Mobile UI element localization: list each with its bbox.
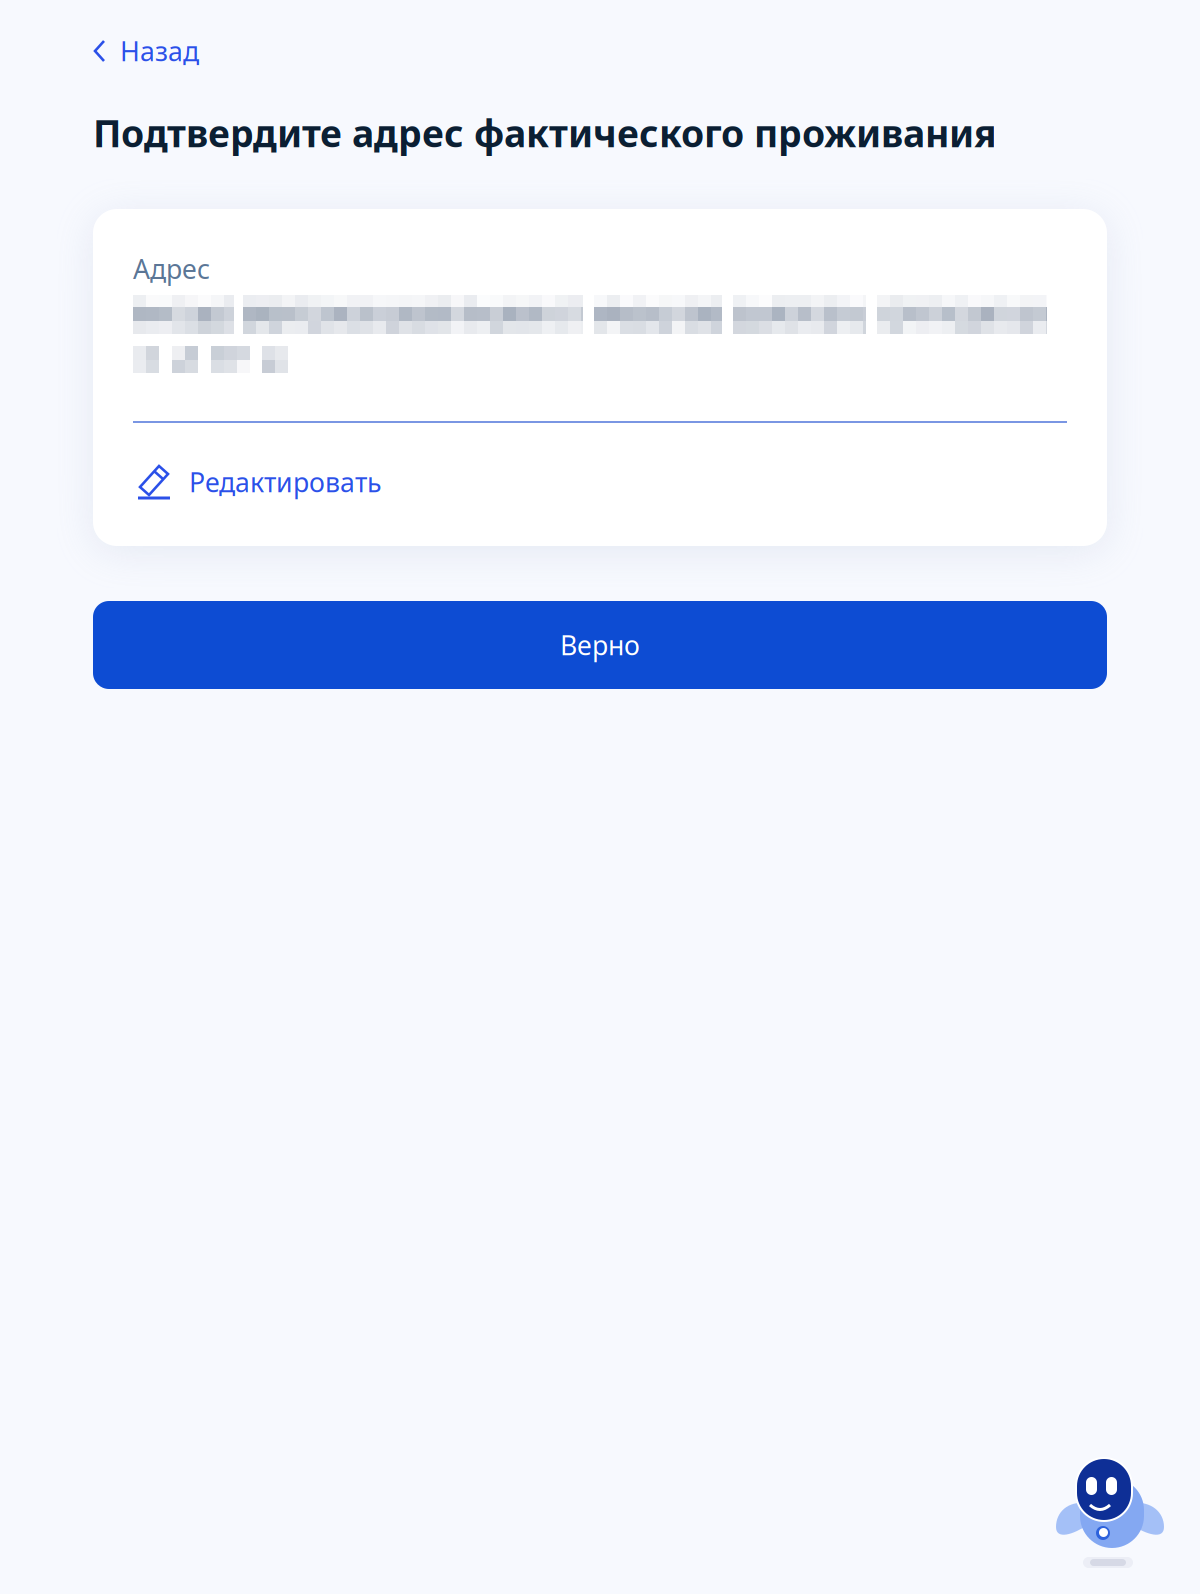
button[interactable]: Редактировать [137,453,517,511]
button[interactable]: Открыть помощника [1055,1456,1167,1570]
staticText: Подтвердите адрес фактического проживани… [93,108,997,158]
button[interactable]: Верно [93,601,1107,689]
button[interactable]: Назад [90,22,330,80]
staticText: Адрес [133,251,210,286]
staticText: Назад [120,33,199,69]
staticText: Редактировать [189,464,382,500]
staticText: Верно [560,627,640,663]
